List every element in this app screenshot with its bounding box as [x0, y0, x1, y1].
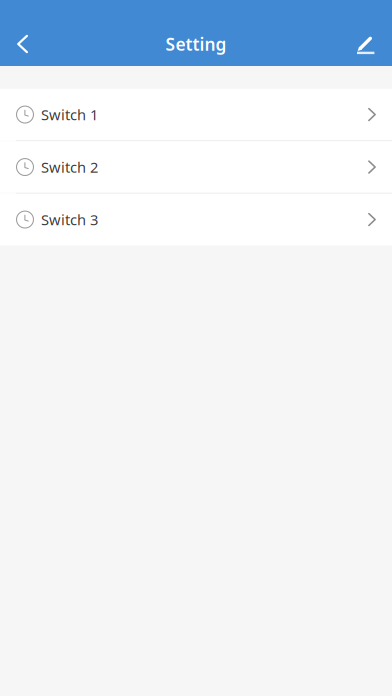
staticText: Switch 1: [41, 105, 98, 124]
button[interactable]: Switch 3: [0, 194, 392, 245]
button[interactable]: Back: [0, 22, 42, 66]
staticText: Switch 2: [41, 157, 98, 177]
staticText: Setting: [165, 32, 226, 55]
button[interactable]: Switch 1: [0, 89, 392, 140]
button[interactable]: Switch 2: [0, 141, 392, 193]
staticText: Switch 3: [41, 210, 98, 229]
button[interactable]: Edit: [343, 22, 392, 66]
